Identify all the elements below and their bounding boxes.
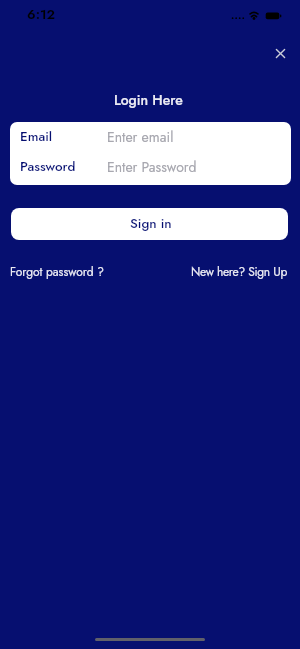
staticText: 6:12 bbox=[27, 5, 56, 25]
staticText: Password bbox=[20, 157, 107, 177]
staticText: Forgot password ? bbox=[10, 263, 104, 280]
staticText: Sign in bbox=[130, 214, 172, 234]
button[interactable]: Password bbox=[10, 152, 291, 182]
staticText: Email bbox=[20, 127, 107, 147]
staticText: Enter Password bbox=[107, 157, 197, 177]
staticText: Login Here bbox=[114, 90, 183, 110]
button[interactable]: New here? Sign Up bbox=[191, 263, 287, 280]
button[interactable]: Email bbox=[10, 122, 291, 152]
staticText: Enter email bbox=[107, 127, 174, 147]
staticText: New here? Sign Up bbox=[191, 263, 287, 280]
button[interactable] bbox=[267, 40, 293, 66]
button[interactable]: Forgot password ? bbox=[10, 263, 104, 280]
button[interactable]: Sign in bbox=[11, 208, 288, 240]
